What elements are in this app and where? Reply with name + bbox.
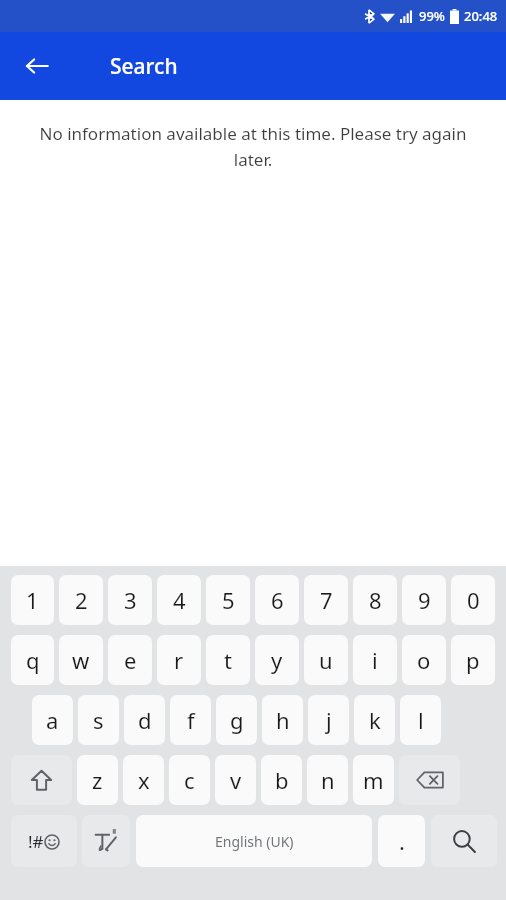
- button[interactable]: 7: [304, 575, 348, 625]
- staticText: j: [326, 705, 332, 735]
- button[interactable]: n: [307, 755, 348, 805]
- button[interactable]: f: [170, 695, 211, 745]
- button[interactable]: y: [255, 635, 299, 685]
- button[interactable]: 4: [157, 575, 201, 625]
- button[interactable]: .: [378, 815, 425, 867]
- staticText: g: [230, 705, 244, 735]
- staticText: e: [124, 645, 137, 675]
- staticText: r: [174, 645, 184, 675]
- staticText: 3: [124, 585, 137, 615]
- button[interactable]: j: [308, 695, 349, 745]
- staticText: w: [72, 645, 90, 675]
- button[interactable]: 6: [255, 575, 299, 625]
- button[interactable]: b: [261, 755, 302, 805]
- button[interactable]: h: [262, 695, 303, 745]
- staticText: !#: [28, 830, 44, 853]
- staticText: 20:48: [464, 7, 498, 25]
- staticText: f: [187, 705, 195, 735]
- button[interactable]: 3: [108, 575, 152, 625]
- staticText: 4: [173, 585, 186, 615]
- button[interactable]: 5: [206, 575, 250, 625]
- button[interactable]: 0: [451, 575, 495, 625]
- staticText: 0: [467, 585, 480, 615]
- staticText: t: [224, 645, 232, 675]
- button[interactable]: Handwriting: [82, 815, 130, 867]
- button[interactable]: i: [353, 635, 397, 685]
- button[interactable]: z: [77, 755, 118, 805]
- button[interactable]: 8: [353, 575, 397, 625]
- button[interactable]: v: [215, 755, 256, 805]
- button[interactable]: Symbols: [11, 815, 77, 867]
- button[interactable]: English (UK): [136, 815, 372, 867]
- staticText: a: [46, 705, 59, 735]
- button[interactable]: c: [169, 755, 210, 805]
- staticText: z: [92, 765, 103, 795]
- button[interactable]: u: [304, 635, 348, 685]
- staticText: 9: [418, 585, 431, 615]
- staticText: n: [321, 765, 335, 795]
- button[interactable]: Backspace: [399, 755, 460, 805]
- staticText: No information available at this time. P…: [38, 122, 468, 171]
- staticText: 8: [369, 585, 382, 615]
- button[interactable]: 2: [59, 575, 103, 625]
- button[interactable]: Shift: [11, 755, 72, 805]
- button[interactable]: o: [402, 635, 446, 685]
- staticText: 7: [320, 585, 333, 615]
- staticText: English (UK): [215, 832, 294, 851]
- staticText: m: [363, 765, 384, 795]
- button[interactable]: p: [451, 635, 495, 685]
- staticText: v: [230, 765, 242, 795]
- button[interactable]: Search: [431, 815, 497, 867]
- button[interactable]: t: [206, 635, 250, 685]
- button[interactable]: r: [157, 635, 201, 685]
- button[interactable]: s: [78, 695, 119, 745]
- staticText: b: [275, 765, 289, 795]
- button[interactable]: m: [353, 755, 394, 805]
- button[interactable]: a: [32, 695, 73, 745]
- staticText: q: [26, 645, 40, 675]
- staticText: s: [93, 705, 104, 735]
- button[interactable]: 9: [402, 575, 446, 625]
- staticText: o: [417, 645, 431, 675]
- button[interactable]: w: [59, 635, 103, 685]
- staticText: l: [418, 705, 424, 735]
- staticText: Search: [110, 52, 178, 81]
- staticText: 99%: [419, 7, 445, 25]
- button[interactable]: Back: [12, 41, 62, 91]
- button[interactable]: e: [108, 635, 152, 685]
- staticText: 6: [271, 585, 284, 615]
- staticText: c: [184, 765, 195, 795]
- button[interactable]: 1: [11, 575, 54, 625]
- staticText: p: [466, 645, 480, 675]
- button[interactable]: g: [216, 695, 257, 745]
- staticText: x: [138, 765, 150, 795]
- staticText: u: [319, 645, 333, 675]
- staticText: h: [276, 705, 290, 735]
- button[interactable]: x: [123, 755, 164, 805]
- staticText: y: [271, 645, 283, 675]
- staticText: .: [399, 826, 405, 856]
- button[interactable]: l: [400, 695, 441, 745]
- button[interactable]: d: [124, 695, 165, 745]
- staticText: i: [372, 645, 378, 675]
- staticText: d: [138, 705, 152, 735]
- staticText: k: [369, 705, 381, 735]
- button[interactable]: q: [11, 635, 54, 685]
- staticText: 1: [26, 585, 39, 615]
- button[interactable]: k: [354, 695, 395, 745]
- staticText: 2: [75, 585, 88, 615]
- staticText: 5: [222, 585, 235, 615]
